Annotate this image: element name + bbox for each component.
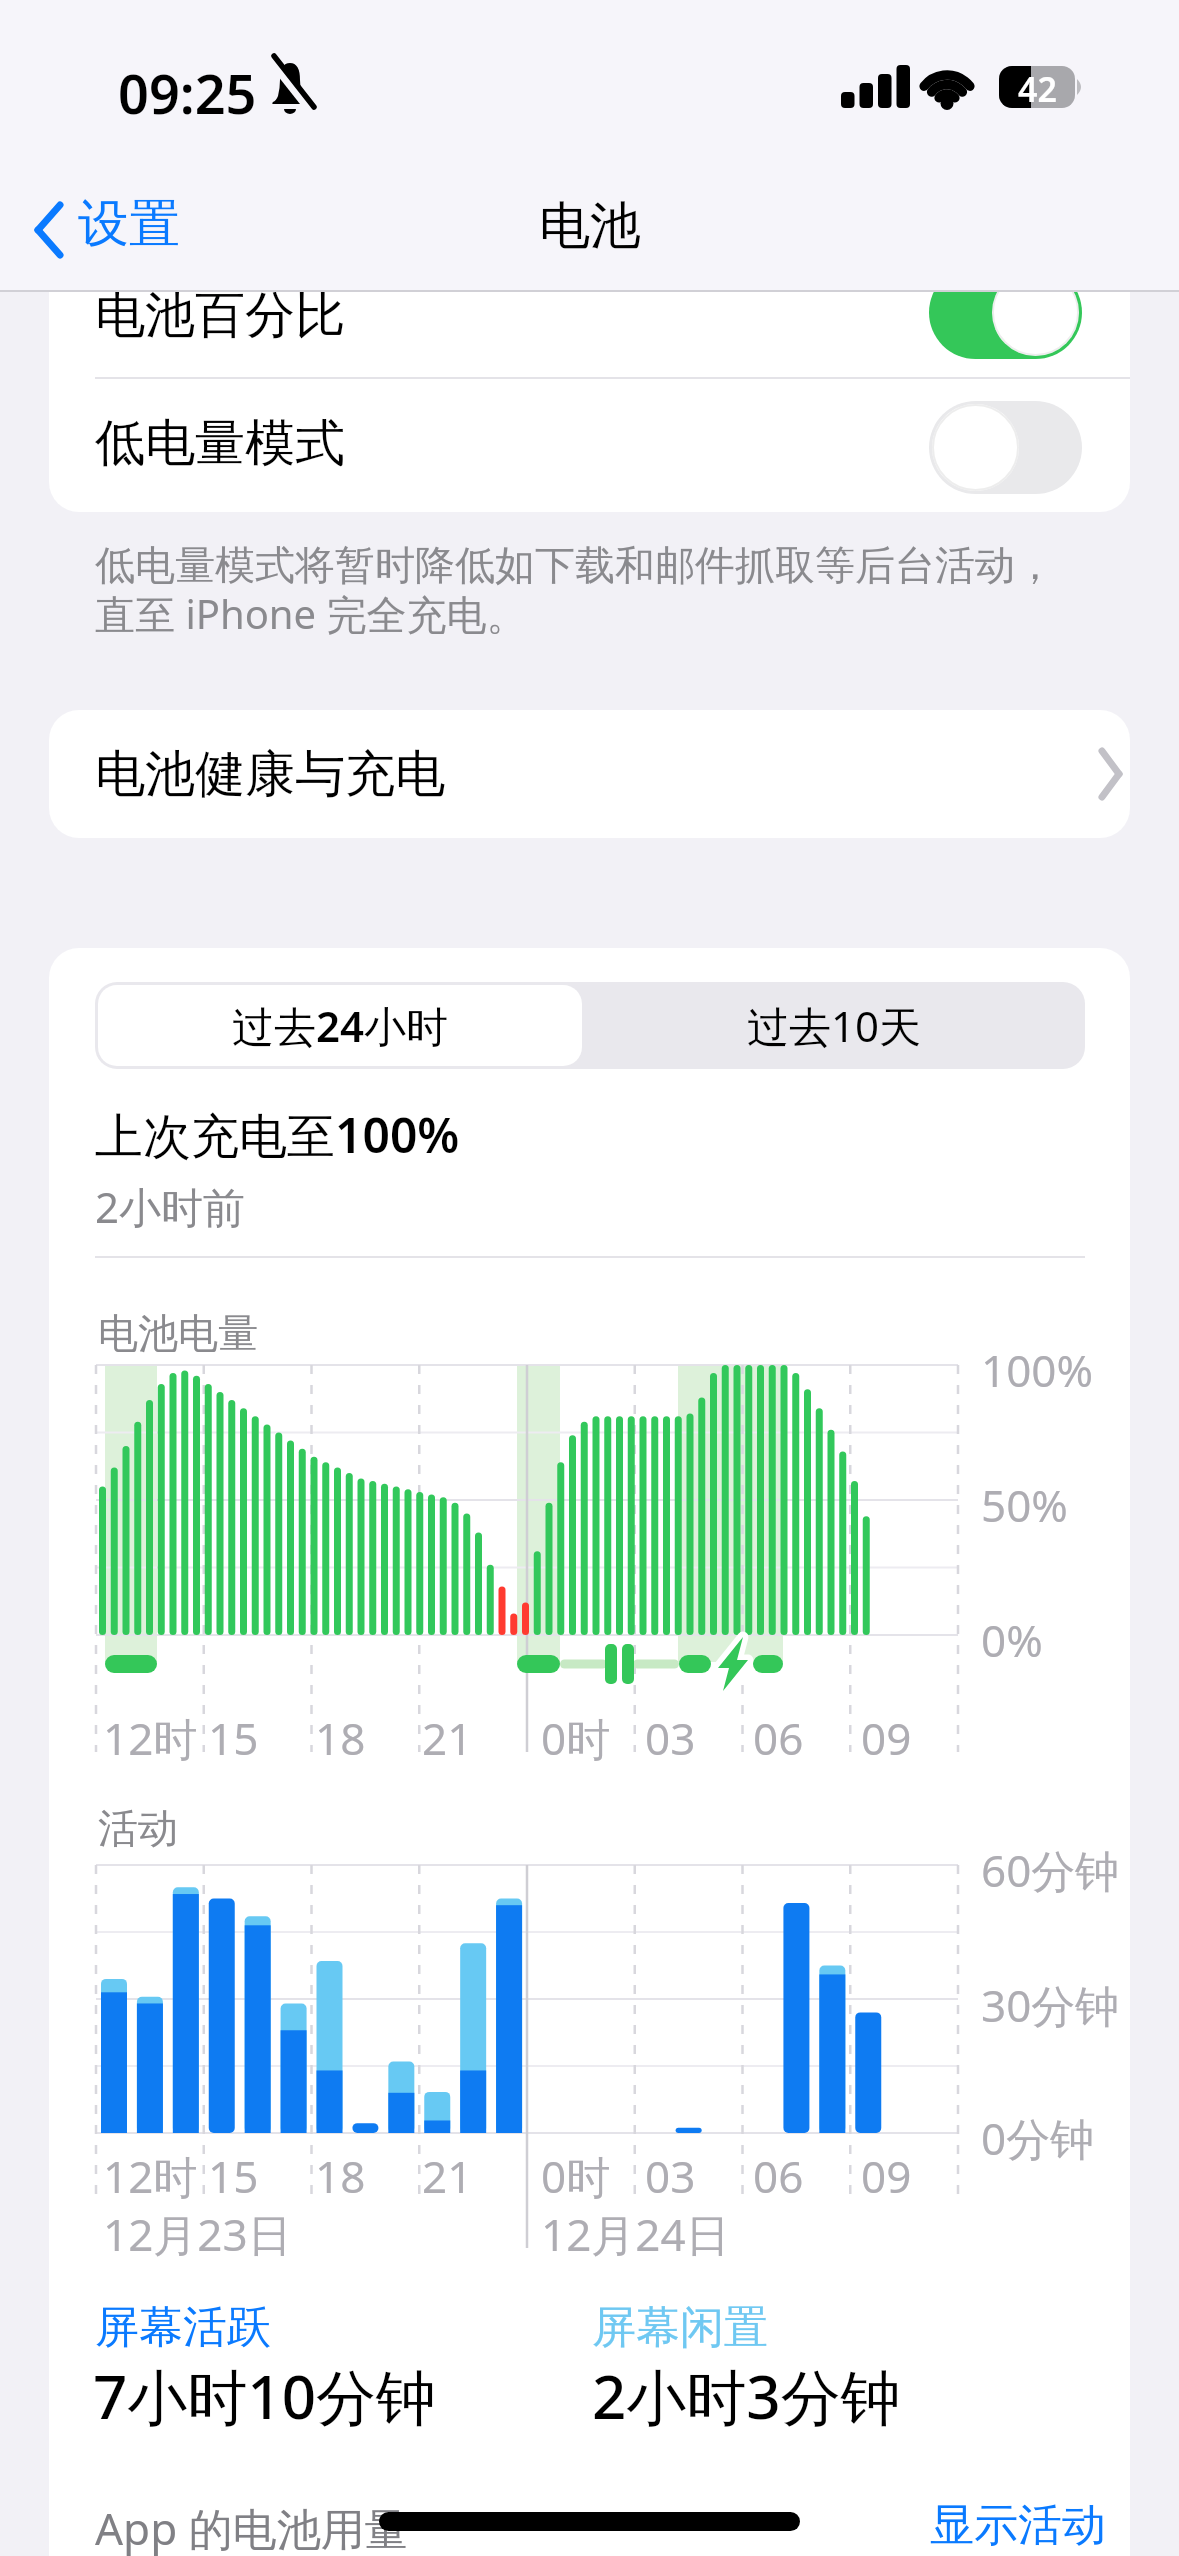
staticText: 09:25: [118, 56, 257, 130]
staticText: 电池健康与充电: [95, 743, 445, 806]
staticText: 21: [422, 1708, 473, 1768]
staticText: 7小时10分钟: [93, 2355, 436, 2437]
staticText: 0分钟: [981, 2108, 1095, 2168]
staticText: 电池百分比: [95, 292, 345, 347]
staticText: 06: [753, 2146, 804, 2206]
staticText: 屏幕活跃: [95, 2300, 271, 2355]
button[interactable]: 低电量模式: [49, 379, 1130, 512]
staticText: 100%: [981, 1340, 1094, 1400]
button[interactable]: 设置: [20, 190, 220, 270]
staticText: 03: [645, 1708, 696, 1768]
staticText: 0时: [541, 2146, 611, 2206]
staticText: 过去24小时: [232, 997, 449, 1054]
staticText: 电池电量: [98, 1308, 258, 1358]
staticText: 低电量模式: [95, 412, 345, 475]
staticText: 过去10天: [747, 997, 922, 1054]
staticText: 2小时前: [95, 1178, 246, 1235]
staticText: 09: [861, 2146, 912, 2206]
staticText: 03: [645, 2146, 696, 2206]
staticText: 60分钟: [981, 1840, 1120, 1900]
button[interactable]: 电池健康与充电: [49, 710, 1130, 838]
staticText: 直至 iPhone 完全充电。: [95, 586, 527, 641]
button[interactable]: 显示活动: [930, 2498, 1106, 2553]
staticText: 设置: [78, 192, 180, 256]
staticText: 30分钟: [981, 1975, 1120, 2035]
button[interactable]: 过去10天: [583, 982, 1085, 1069]
button[interactable]: 过去24小时: [98, 985, 582, 1066]
staticText: 低电量模式将暂时降低如下载和邮件抓取等后台活动，: [95, 540, 1055, 590]
staticText: 15: [208, 1708, 259, 1768]
staticText: App 的电池用量: [95, 2498, 409, 2556]
staticText: 12时: [103, 1708, 198, 1768]
staticText: 12月24日: [541, 2204, 730, 2264]
staticText: 15: [208, 2146, 259, 2206]
staticText: 09: [861, 1708, 912, 1768]
button[interactable]: [929, 401, 1082, 494]
button[interactable]: [929, 292, 1082, 359]
staticText: 屏幕闲置: [592, 2300, 768, 2355]
staticText: 18: [315, 2146, 366, 2206]
staticText: 50%: [981, 1475, 1068, 1535]
staticText: 21: [422, 2146, 473, 2206]
staticText: 活动: [98, 1803, 178, 1853]
staticText: 0%: [981, 1610, 1043, 1670]
staticText: 0时: [541, 1708, 611, 1768]
staticText: 2小时3分钟: [592, 2355, 901, 2437]
staticText: 12月23日: [103, 2204, 292, 2264]
staticText: 电池: [539, 194, 641, 258]
staticText: 06: [753, 1708, 804, 1768]
staticText: 18: [315, 1708, 366, 1768]
staticText: 42: [1018, 66, 1057, 108]
button[interactable]: 电池百分比: [49, 292, 1130, 378]
staticText: 上次充电至100%: [95, 1102, 460, 1168]
staticText: 12时: [103, 2146, 198, 2206]
